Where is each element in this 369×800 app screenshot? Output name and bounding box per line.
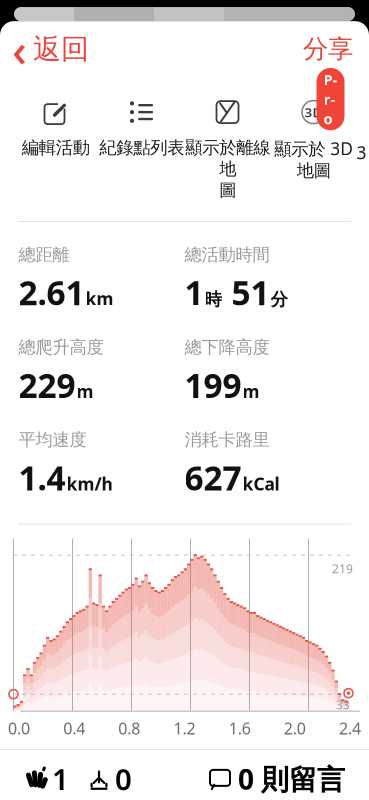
button[interactable]: 3D [270, 93, 356, 185]
staticText: 分享 [303, 34, 353, 65]
staticText: 總下降高度 [184, 336, 269, 358]
staticText: 627 [184, 455, 241, 500]
staticText: 平均速度 [18, 429, 86, 450]
staticText: 分 [270, 289, 287, 310]
button[interactable]: 編輯活動 [12, 93, 98, 162]
staticText: 199 [184, 363, 241, 407]
staticText: 0.8 [118, 718, 140, 739]
staticText: 2.4 [339, 718, 361, 739]
staticText: ‹ [12, 19, 27, 79]
staticText: 編輯活動 [21, 137, 89, 158]
button[interactable]: 顯示於離線地 圖 [184, 93, 270, 205]
staticText: 219 [332, 561, 353, 576]
staticText: m [76, 380, 93, 403]
staticText: 1 [52, 759, 69, 798]
staticText: 消耗卡路里 [184, 429, 269, 450]
staticText: 1.6 [229, 718, 251, 739]
button[interactable]: Claps [24, 751, 69, 800]
staticText: 0 則留言 [238, 760, 345, 797]
staticText: 3 [356, 141, 366, 164]
button[interactable]: 紀錄點列表 [98, 93, 184, 162]
button[interactable]: 分享 [303, 26, 369, 73]
staticText: 總距離 [18, 244, 69, 265]
staticText: 總活動時間 [184, 244, 269, 265]
staticText: 2.61 [18, 270, 84, 315]
staticText: km/h [66, 472, 112, 495]
staticText: 總爬升高度 [18, 336, 103, 358]
staticText: 顯示於 3D 地圖 [274, 137, 353, 181]
staticText: 0.4 [63, 718, 85, 739]
staticText: 0 [115, 759, 132, 798]
staticText: m [242, 380, 259, 403]
staticText: 229 [18, 363, 75, 407]
staticText: 返回 [33, 32, 89, 66]
staticText: 3D [304, 103, 322, 121]
staticText: 1.4 [18, 455, 65, 500]
button[interactable]: 0 則留言 [208, 752, 345, 800]
staticText: 時 [204, 289, 221, 310]
staticText: 51 [222, 270, 269, 315]
staticText: 0.0 [8, 718, 30, 739]
staticText: 33 [336, 697, 350, 712]
staticText: 2.0 [284, 718, 306, 739]
staticText: 1.2 [173, 718, 195, 739]
button[interactable]: ‹ [0, 11, 89, 87]
staticText: 顯示於離線地 圖 [185, 137, 270, 201]
staticText: km [85, 287, 113, 310]
button[interactable]: Downloads [69, 751, 132, 800]
staticText: 1 [184, 270, 203, 315]
staticText: 紀錄點列表 [99, 137, 184, 158]
staticText: kCal [242, 472, 279, 495]
staticText: Pro [323, 70, 337, 128]
